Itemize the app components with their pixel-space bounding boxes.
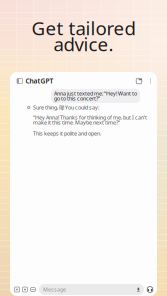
button[interactable]: Add attachment [13, 284, 21, 295]
staticText: Sure thing, RJ! You could say: [33, 104, 99, 111]
staticText: advice. [53, 32, 113, 56]
staticText: ChatGPT [26, 77, 54, 85]
staticText: Get tailored [31, 16, 135, 40]
button[interactable]: Voice mode [144, 284, 156, 295]
staticText: This keeps it polite and open. [33, 130, 101, 137]
button[interactable]: Tools [29, 284, 37, 295]
staticText: make it this time. Maybe next time?” [33, 119, 120, 126]
staticText: Anna just texted me: “Hey! Want to [54, 90, 137, 97]
button[interactable]: New chat [133, 74, 145, 88]
button[interactable]: Camera [21, 284, 29, 295]
staticText: go to this concert?” [54, 95, 100, 102]
staticText: “Hey Anna! Thanks for thinking of me, bu… [33, 114, 147, 121]
button[interactable]: ChatGPT [10, 74, 59, 88]
button[interactable]: Message [39, 284, 144, 295]
staticText: Message [43, 286, 66, 293]
button[interactable]: More options [145, 74, 156, 88]
